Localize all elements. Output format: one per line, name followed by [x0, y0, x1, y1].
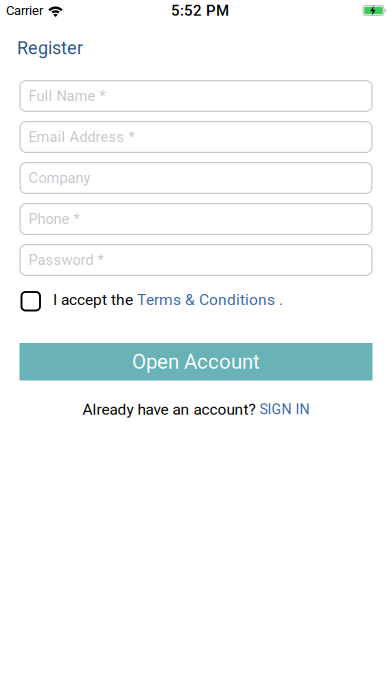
staticText: Email Address * [28, 128, 134, 145]
button[interactable]: Phone * [19, 203, 372, 235]
staticText: 5:52 PM [171, 2, 229, 19]
staticText: SIGN IN [259, 401, 309, 418]
staticText: Phone * [28, 210, 79, 227]
staticText: Carrier [6, 3, 43, 18]
staticText: I accept the [53, 291, 137, 309]
button[interactable]: SIGN IN [259, 401, 309, 418]
staticText: Full Name * [28, 87, 105, 104]
staticText: Open Account [132, 350, 260, 374]
button[interactable]: Password * [19, 244, 372, 276]
button[interactable]: Email Address * [19, 121, 372, 153]
staticText: Already have an account? [82, 400, 259, 418]
button[interactable]: Terms & Conditions . [137, 291, 283, 309]
button[interactable]: Open Account [19, 343, 372, 380]
button[interactable]: Company [19, 162, 372, 194]
staticText: Password * [28, 251, 103, 268]
staticText: Register [17, 37, 83, 59]
button[interactable]: Full Name * [19, 80, 372, 112]
staticText: Company [28, 169, 90, 186]
button[interactable]: Accept Terms & Conditions [21, 292, 40, 310]
staticText: Terms & Conditions . [137, 291, 283, 309]
